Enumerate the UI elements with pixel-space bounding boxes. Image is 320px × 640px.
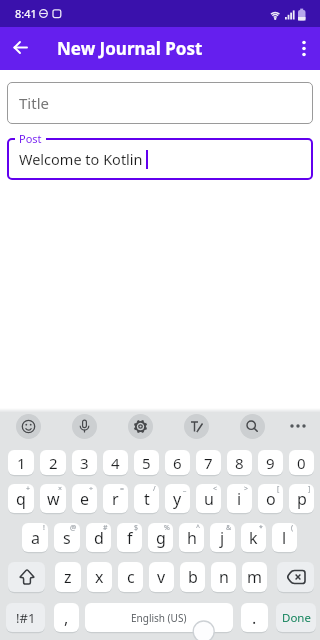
button[interactable]: m [242,562,267,592]
button[interactable]: b [180,562,205,592]
button[interactable] [0,27,42,69]
staticText: ( [291,523,294,533]
staticText: j [220,527,225,549]
staticText: , [64,607,69,629]
staticText: d [94,527,104,549]
button[interactable]: !#1 [6,603,45,632]
button[interactable]: 6 [165,450,190,475]
button[interactable]: f [117,523,142,552]
staticText: w [47,488,60,510]
button[interactable] [284,31,320,67]
button[interactable]: r [103,484,128,513]
button[interactable]: Done [276,603,316,632]
button[interactable] [72,414,97,439]
button[interactable]: o [258,484,283,513]
button[interactable]: z [55,562,81,592]
staticText: 2 [49,453,58,473]
staticText: 4 [111,453,120,473]
button[interactable]: 2 [40,450,66,475]
button[interactable]: q [8,484,34,513]
staticText: t [144,488,150,510]
button[interactable]: 1 [8,450,34,475]
button[interactable]: English (US) [85,603,233,632]
staticText: u [204,488,214,510]
staticText: l [282,527,287,549]
staticText: s [63,527,71,549]
staticText: m [247,566,262,588]
staticText: q [16,488,26,510]
staticText: New Journal Post [57,37,203,60]
staticText: x [95,566,104,588]
button[interactable] [277,562,314,592]
button[interactable]: j [210,523,235,552]
button[interactable]: w [40,484,66,513]
staticText: & [226,523,232,533]
button[interactable]: h [179,523,204,552]
button[interactable] [128,414,153,439]
staticText: Title [19,93,49,113]
staticText: # [103,523,108,533]
button[interactable] [16,414,41,439]
button[interactable]: . [241,603,268,632]
button[interactable]: c [118,562,143,592]
staticText: ] [308,484,311,494]
button[interactable]: l [272,523,297,552]
staticText: [ [277,484,280,494]
button[interactable]: p [289,484,314,513]
button[interactable] [8,562,45,592]
button[interactable]: i [227,484,252,513]
staticText: y [173,488,182,510]
staticText: 0 [297,453,306,473]
button[interactable]: a [22,523,48,552]
staticText: h [187,527,197,549]
staticText: Welcome to Kotlin [19,149,143,169]
button[interactable]: g [148,523,173,552]
staticText: p [297,488,307,510]
button[interactable]: n [211,562,236,592]
staticText: f [127,527,133,549]
button[interactable]: e [72,484,97,513]
staticText: 8:41 [15,6,37,21]
staticText: e [80,488,90,510]
staticText: Done [282,610,311,626]
button[interactable]: 9 [258,450,283,475]
staticText: ! [43,523,45,533]
button[interactable]: 8 [227,450,252,475]
staticText: ÷ [89,484,94,494]
button[interactable]: v [149,562,174,592]
staticText: 8 [235,453,244,473]
staticText: 9 [266,453,275,473]
staticText: × [58,484,63,494]
button[interactable] [184,414,209,439]
button[interactable]: Welcome to Kotlin [7,138,313,180]
button[interactable]: d [86,523,111,552]
button[interactable]: 5 [134,450,159,475]
button[interactable]: Title [7,82,313,124]
button[interactable] [287,415,309,437]
button[interactable]: s [54,523,80,552]
button[interactable]: , [54,603,79,632]
button[interactable]: t [134,484,159,513]
staticText: !#1 [16,609,36,627]
staticText: b [188,566,198,588]
button[interactable]: u [196,484,221,513]
button[interactable]: x [87,562,112,592]
button[interactable]: k [241,523,266,552]
staticText: < [213,484,218,494]
button[interactable]: 7 [196,450,221,475]
staticText: . [252,607,257,629]
button[interactable]: 3 [72,450,97,475]
button[interactable] [240,414,265,439]
button[interactable]: y [165,484,190,513]
staticText: z [64,566,72,588]
staticText: ^ [196,523,201,533]
staticText: 1 [17,453,26,473]
staticText: r [112,488,119,510]
staticText: / [153,484,156,494]
staticText: % [164,523,170,533]
staticText: $ [134,523,139,533]
button[interactable]: 0 [289,450,314,475]
staticText: + [26,484,31,494]
staticText: a [31,527,40,549]
button[interactable]: 4 [103,450,128,475]
